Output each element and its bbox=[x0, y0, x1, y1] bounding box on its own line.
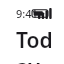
staticText: Today bbox=[16, 26, 58, 64]
staticText: 9:41 bbox=[16, 6, 38, 21]
